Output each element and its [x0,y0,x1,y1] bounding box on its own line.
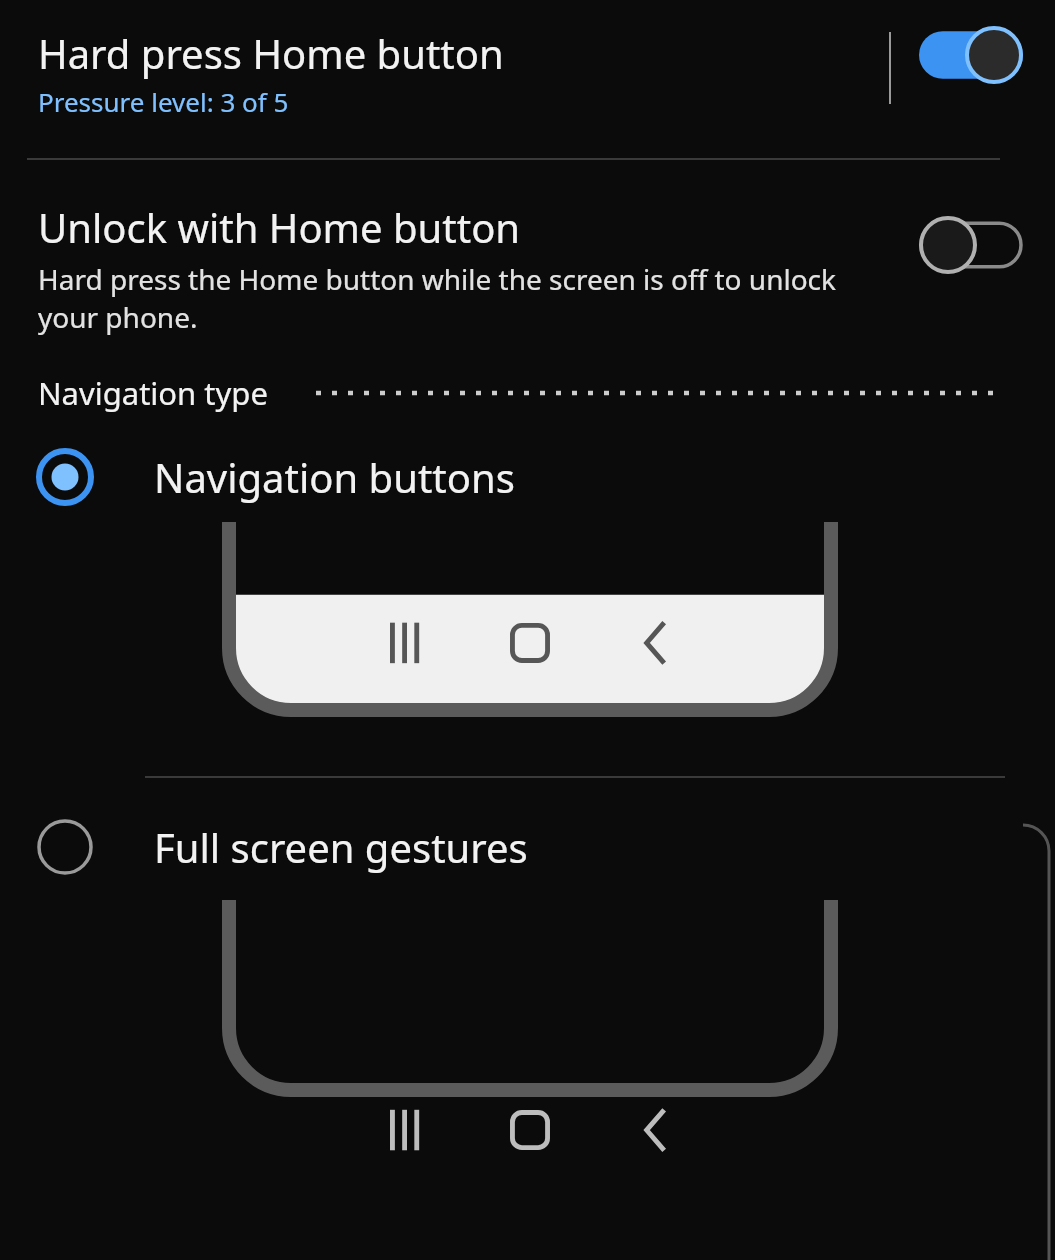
staticText: Hard press the Home button while the scr… [38,260,893,336]
button[interactable]: Toggle on [919,26,1023,84]
staticText: Pressure level: 3 of 5 [38,84,289,119]
staticText: Navigation type [38,372,268,414]
staticText: Navigation buttons [154,450,515,504]
button[interactable]: Toggle off [919,216,1023,274]
staticText: Full screen gestures [154,820,528,874]
staticText: Hard press Home button [38,26,504,80]
button[interactable]: Full screen gestures [0,818,1055,1167]
button[interactable]: Navigation buttons [0,448,1055,724]
staticText: Unlock with Home button [38,200,521,254]
button[interactable]: Hard press Home button [0,0,1055,158]
button[interactable]: Unlock with Home button [0,160,1055,350]
